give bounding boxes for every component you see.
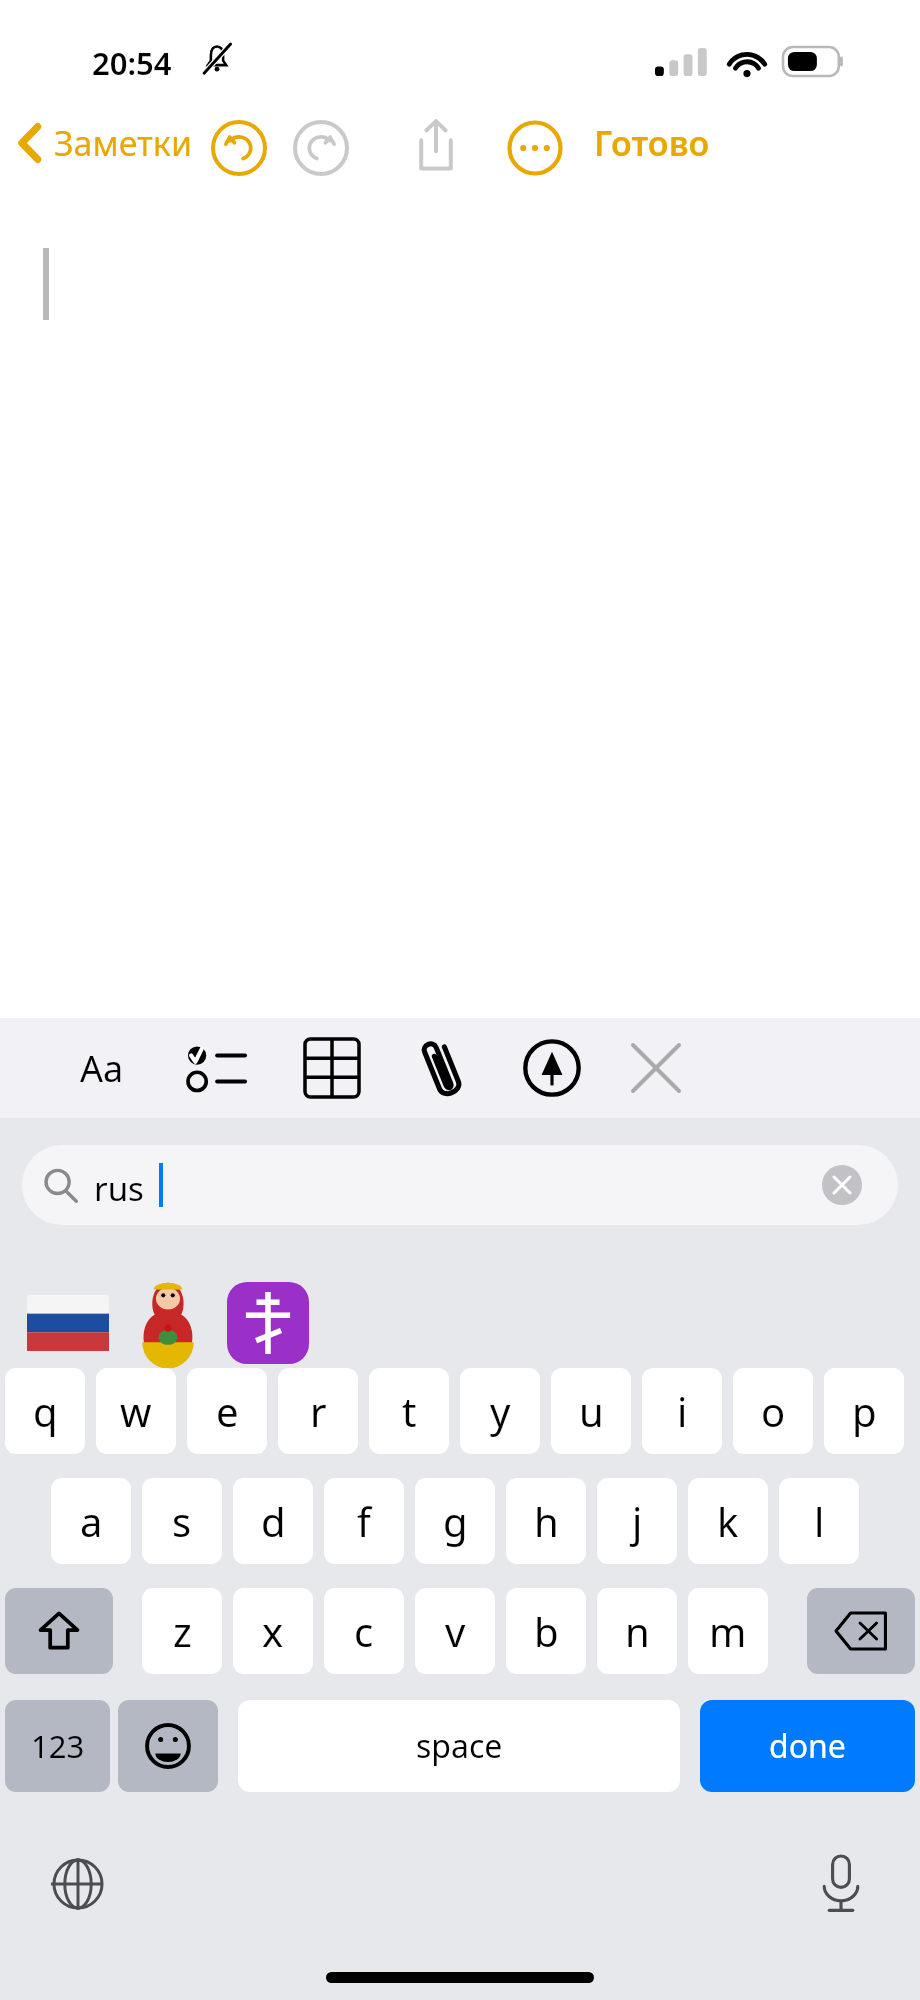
button[interactable]: More: [504, 117, 566, 179]
button[interactable]: e: [187, 1368, 267, 1454]
staticText: h: [534, 1494, 559, 1548]
staticText: space: [416, 1724, 503, 1768]
staticText: 123: [31, 1725, 85, 1767]
button[interactable]: z: [142, 1588, 222, 1674]
button[interactable]: Shift: [5, 1588, 113, 1674]
staticText: Готово: [594, 120, 710, 166]
button[interactable]: rus: [22, 1145, 898, 1225]
button[interactable]: Clear: [822, 1165, 862, 1205]
button[interactable]: done: [700, 1700, 915, 1792]
staticText: v: [445, 1604, 466, 1658]
button[interactable]: y: [460, 1368, 540, 1454]
button[interactable]: Table: [288, 1032, 376, 1104]
staticText: l: [814, 1494, 825, 1548]
button[interactable]: l: [779, 1478, 859, 1564]
staticText: Заметки: [54, 120, 193, 166]
staticText: w: [120, 1384, 152, 1438]
button[interactable]: i: [642, 1368, 722, 1454]
staticText: a: [80, 1494, 103, 1548]
staticText: q: [33, 1384, 58, 1438]
staticText: i: [677, 1384, 688, 1438]
button[interactable]: n: [597, 1588, 677, 1674]
staticText: rus: [94, 1166, 144, 1211]
staticText: t: [402, 1384, 417, 1438]
staticText: j: [632, 1494, 643, 1548]
button[interactable]: q: [5, 1368, 85, 1454]
button[interactable]: Markup: [508, 1032, 596, 1104]
button[interactable]: Заметки: [10, 112, 201, 174]
button[interactable]: Redo: [290, 117, 352, 179]
button[interactable]: s: [142, 1478, 222, 1564]
button[interactable]: Undo: [208, 117, 270, 179]
button[interactable]: Change keyboard: [42, 1848, 114, 1920]
button[interactable]: t: [369, 1368, 449, 1454]
button[interactable]: space: [238, 1700, 680, 1792]
staticText: p: [852, 1384, 877, 1438]
button[interactable]: Checklist: [172, 1032, 260, 1104]
button[interactable]: a: [51, 1478, 131, 1564]
button[interactable]: Share: [405, 112, 467, 178]
button[interactable]: Готово: [580, 112, 724, 174]
staticText: x: [262, 1604, 284, 1658]
button[interactable]: h: [506, 1478, 586, 1564]
staticText: o: [761, 1384, 786, 1438]
staticText: n: [625, 1604, 650, 1658]
button[interactable]: b: [506, 1588, 586, 1674]
button[interactable]: d: [233, 1478, 313, 1564]
staticText: 20:54: [92, 42, 172, 84]
staticText: e: [216, 1384, 239, 1438]
button[interactable]: Backspace: [807, 1588, 915, 1674]
staticText: Aa: [80, 1044, 124, 1093]
staticText: y: [490, 1384, 511, 1438]
staticText: f: [357, 1494, 371, 1548]
button[interactable]: k: [688, 1478, 768, 1564]
staticText: g: [443, 1494, 468, 1548]
staticText: d: [261, 1494, 286, 1548]
staticText: k: [717, 1494, 739, 1548]
button[interactable]: o: [733, 1368, 813, 1454]
button[interactable]: [118, 1273, 218, 1373]
button[interactable]: g: [415, 1478, 495, 1564]
button[interactable]: Close: [612, 1032, 700, 1104]
staticText: z: [173, 1604, 192, 1658]
button[interactable]: [218, 1273, 318, 1373]
button[interactable]: c: [324, 1588, 404, 1674]
staticText: r: [310, 1384, 327, 1438]
staticText: u: [579, 1384, 604, 1438]
staticText: done: [769, 1724, 846, 1768]
button[interactable]: v: [415, 1588, 495, 1674]
button[interactable]: r: [278, 1368, 358, 1454]
button[interactable]: j: [597, 1478, 677, 1564]
button[interactable]: p: [824, 1368, 904, 1454]
button[interactable]: f: [324, 1478, 404, 1564]
button[interactable]: Emoji: [118, 1700, 218, 1792]
button[interactable]: [18, 1273, 118, 1373]
button[interactable]: Numbers: [5, 1700, 110, 1792]
staticText: s: [172, 1494, 192, 1548]
button[interactable]: w: [96, 1368, 176, 1454]
button[interactable]: u: [551, 1368, 631, 1454]
button[interactable]: Format: [58, 1032, 146, 1104]
staticText: c: [354, 1604, 374, 1658]
button[interactable]: m: [688, 1588, 768, 1674]
button[interactable]: Attach: [398, 1032, 486, 1104]
button[interactable]: Dictate: [805, 1848, 877, 1920]
staticText: b: [534, 1604, 559, 1658]
staticText: m: [709, 1604, 747, 1658]
button[interactable]: x: [233, 1588, 313, 1674]
